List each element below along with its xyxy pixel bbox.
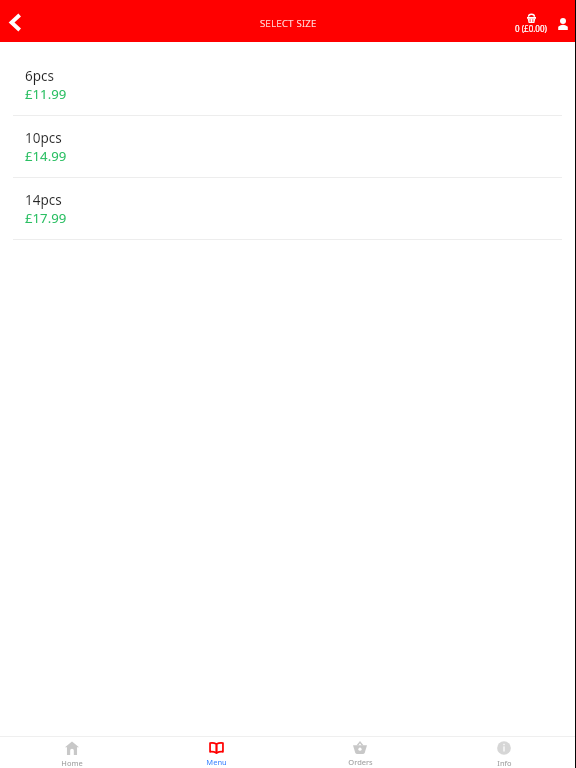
button[interactable]: Home xyxy=(0,740,144,768)
staticText: £11.99 xyxy=(25,85,67,103)
button[interactable]: 6pcs xyxy=(0,54,576,116)
staticText: Orders xyxy=(348,757,373,767)
button[interactable]: 0 (£0.00) xyxy=(511,12,551,36)
staticText: 6pcs xyxy=(25,67,54,85)
staticText: 10pcs xyxy=(25,129,62,147)
staticText: Home xyxy=(61,758,83,768)
button[interactable]: Info xyxy=(432,740,576,768)
staticText: Info xyxy=(497,758,512,768)
button[interactable]: Orders xyxy=(288,740,432,768)
button[interactable]: 14pcs xyxy=(0,178,576,240)
staticText: Menu xyxy=(206,757,227,767)
button[interactable]: 10pcs xyxy=(0,116,576,178)
staticText: £17.99 xyxy=(25,209,67,227)
staticText: 0 (£0.00) xyxy=(515,23,547,34)
button[interactable]: Menu xyxy=(144,740,288,768)
button[interactable]: Back xyxy=(3,3,27,41)
staticText: SELECT SIZE xyxy=(260,17,317,30)
button[interactable]: Account xyxy=(552,13,574,35)
staticText: £14.99 xyxy=(25,147,67,165)
staticText: 14pcs xyxy=(25,191,62,209)
